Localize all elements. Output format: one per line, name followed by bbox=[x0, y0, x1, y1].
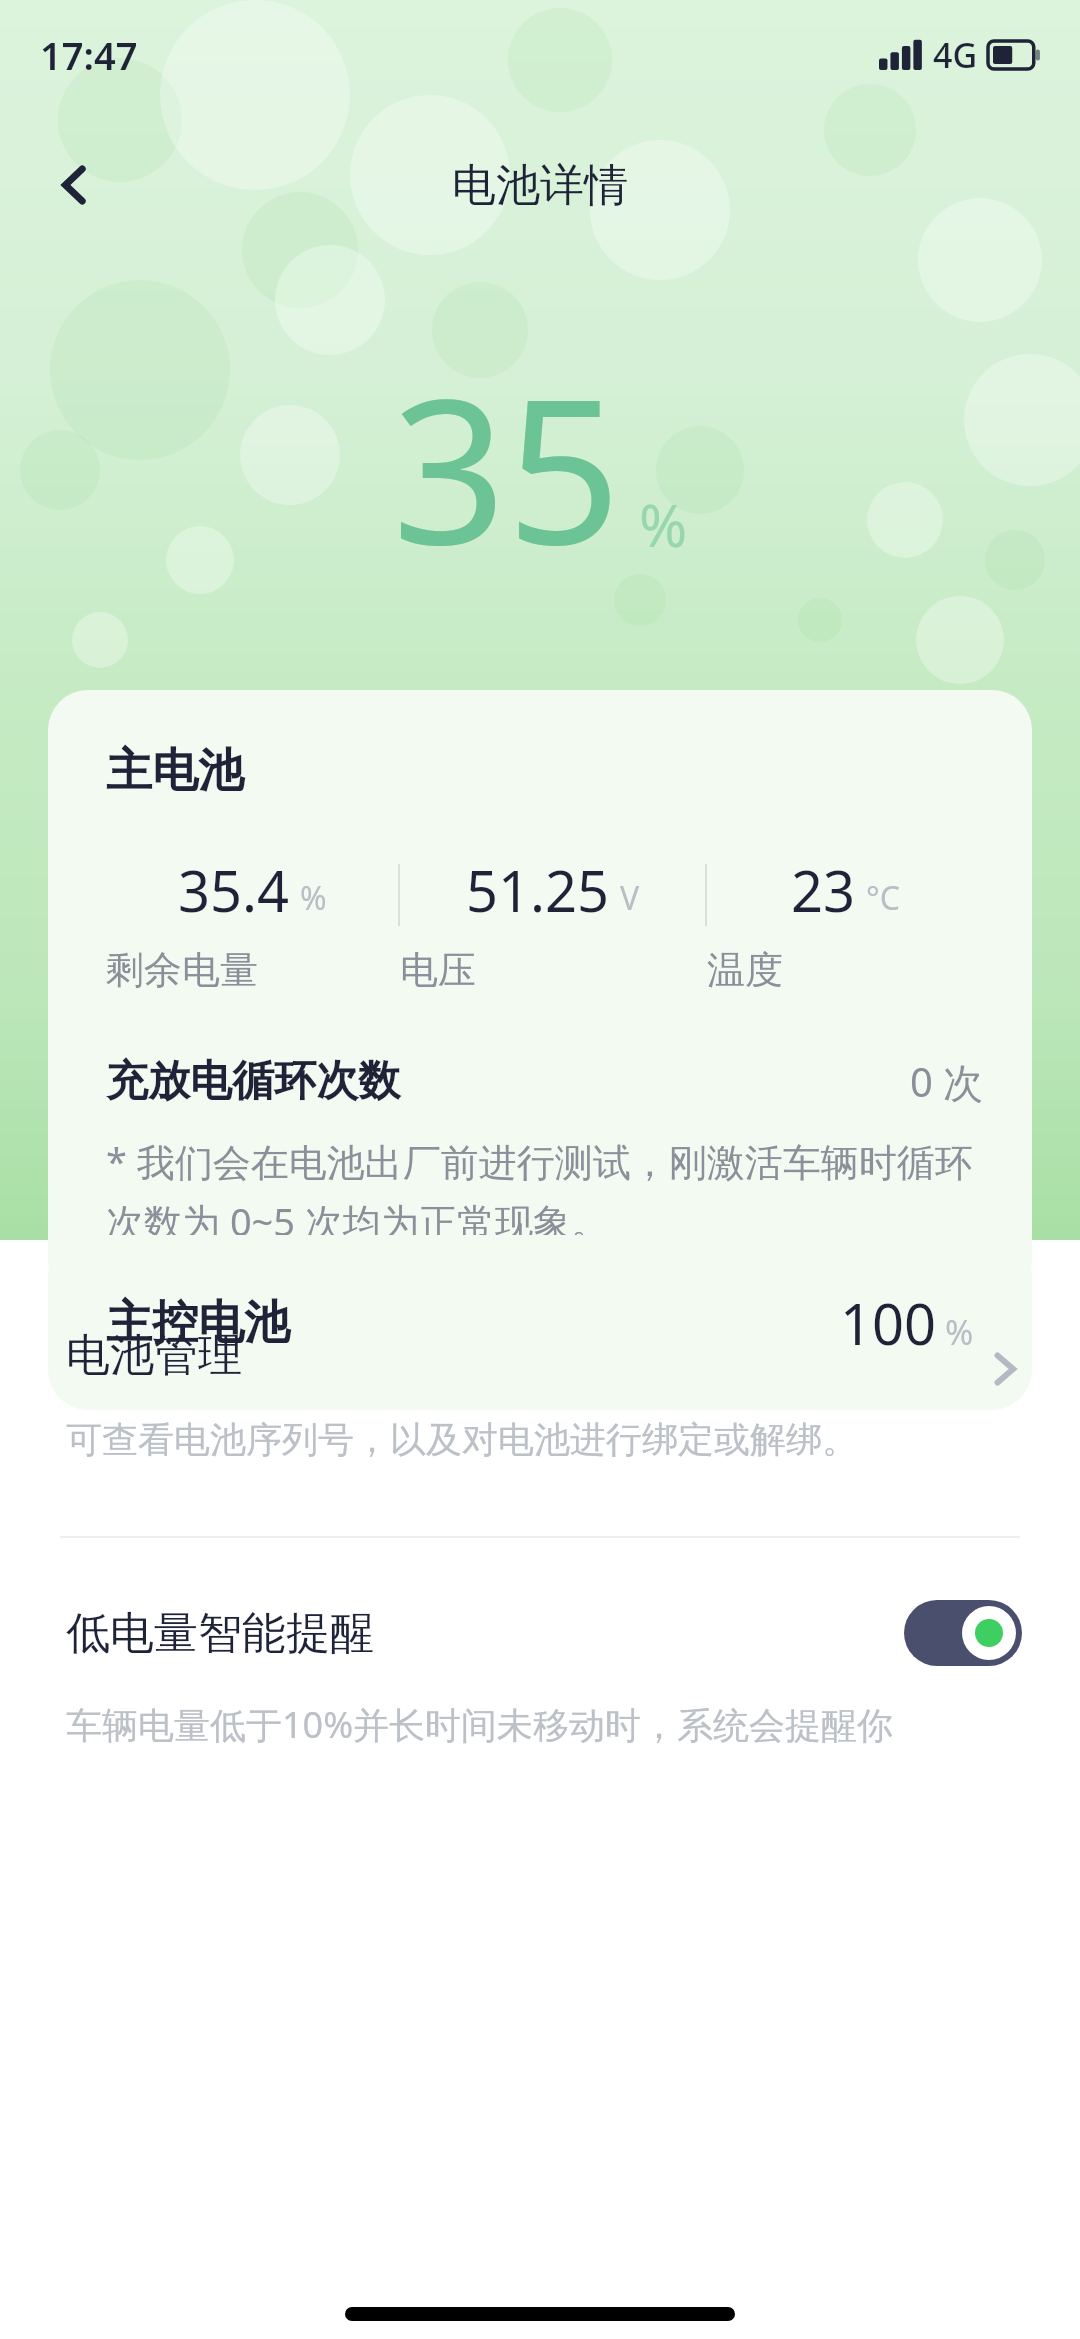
button[interactable]: 主控电池 bbox=[48, 1235, 1032, 1410]
staticText: 可查看电池序列号，以及对电池进行绑定或解绑。 bbox=[66, 1417, 858, 1462]
staticText: % bbox=[300, 876, 327, 920]
staticText: 0 次 bbox=[910, 1054, 984, 1109]
staticText: 100 bbox=[840, 1285, 937, 1361]
staticText: 低电量智能提醒 bbox=[66, 1606, 374, 1661]
staticText: 电池详情 bbox=[452, 158, 628, 213]
staticText: % bbox=[639, 485, 688, 564]
staticText: 35 bbox=[392, 330, 621, 602]
staticText: 主电池 bbox=[106, 742, 244, 800]
staticText: 51.25 bbox=[466, 852, 610, 928]
button[interactable]: 低电量智能提醒开关 bbox=[904, 1600, 1022, 1666]
staticText: 剩余电量 bbox=[106, 946, 398, 994]
staticText: 17:47 bbox=[40, 29, 138, 81]
staticText: 车辆电量低于10%并长时间未移动时，系统会提醒你 bbox=[66, 1700, 894, 1749]
staticText: V bbox=[620, 876, 640, 920]
button[interactable]: 主电池 bbox=[48, 690, 1032, 1299]
staticText: 充放电循环次数 bbox=[106, 1055, 400, 1108]
staticText: 35.4 bbox=[178, 852, 290, 928]
staticText: 主控电池 bbox=[106, 1294, 290, 1352]
staticText: 电压 bbox=[400, 946, 705, 994]
button[interactable]: Back bbox=[30, 140, 120, 230]
staticText: % bbox=[945, 1309, 974, 1355]
staticText: 温度 bbox=[707, 946, 984, 994]
staticText: 4G bbox=[933, 32, 978, 78]
staticText: 电池管理 bbox=[66, 1328, 242, 1383]
staticText: 23 bbox=[791, 852, 856, 928]
staticText: °C bbox=[866, 876, 900, 920]
button[interactable]: 低电量智能提醒 bbox=[0, 1600, 1080, 1666]
staticText: * 我们会在电池出厂前进行测试，刚激活车辆时循环次数为 0~5 次均为正常现象。 bbox=[106, 1135, 984, 1247]
button[interactable]: 电池管理 bbox=[0, 1308, 1080, 1476]
